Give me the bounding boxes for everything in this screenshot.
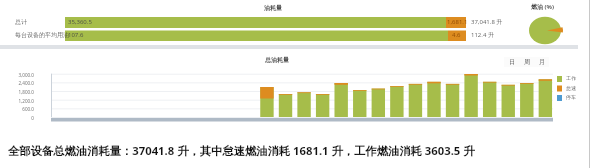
staticText: 全部设备总燃油消耗量：37041.8 升，其中怠速燃油消耗 1681.1 升，工… xyxy=(8,143,475,158)
staticText: 107.6 xyxy=(68,31,84,39)
button[interactable]: 日 xyxy=(504,57,519,67)
staticText: 0 xyxy=(14,115,34,121)
staticText: 燃油 (%) xyxy=(531,3,555,11)
staticText: 总计 xyxy=(15,18,27,26)
button[interactable]: 周 xyxy=(519,57,534,67)
staticText: 每台设备的平均用油 xyxy=(15,31,69,39)
staticText: 600.0 xyxy=(14,106,34,112)
staticText: 停车 xyxy=(566,94,576,100)
staticText: 1,800.0 xyxy=(14,89,34,95)
staticText: 月 xyxy=(539,58,545,66)
staticText: 2,400.0 xyxy=(14,80,34,86)
staticText: 日 xyxy=(509,58,515,66)
staticText: 总油耗量 xyxy=(265,56,289,64)
staticText: 3,000.0 xyxy=(14,72,34,78)
staticText: 4.6 xyxy=(452,31,461,39)
staticText: 怠速 xyxy=(566,85,576,91)
staticText: 35,360.5 xyxy=(68,18,92,26)
button[interactable]: 月 xyxy=(534,57,549,67)
staticText: 1,200.0 xyxy=(14,98,34,104)
staticText: 1,681.1 xyxy=(447,18,468,26)
staticText: 112.4 升 xyxy=(471,31,494,39)
staticText: 周 xyxy=(524,58,530,66)
staticText: 油耗量 xyxy=(264,4,282,12)
staticText: 工作 xyxy=(566,75,576,81)
staticText: 37,041.8 升 xyxy=(471,18,503,26)
